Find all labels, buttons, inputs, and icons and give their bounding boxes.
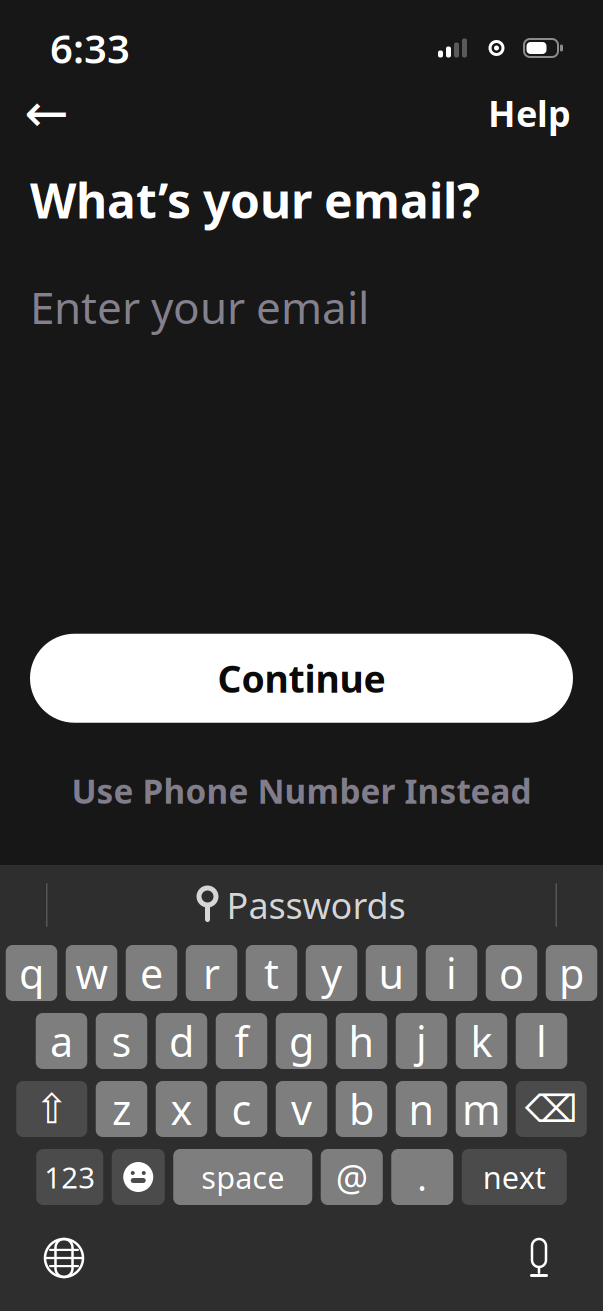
button[interactable]: Use Phone Number Instead <box>30 755 573 827</box>
staticText: d <box>169 1014 194 1068</box>
staticText: i <box>446 946 457 1000</box>
button[interactable]: k <box>456 1013 507 1069</box>
staticText: a <box>50 1014 73 1068</box>
staticText: m <box>462 1082 501 1136</box>
button[interactable]: z <box>96 1081 147 1137</box>
staticText: Passwords <box>226 881 405 929</box>
button[interactable]: j <box>396 1013 447 1069</box>
button[interactable]: Delete <box>516 1081 587 1137</box>
staticText: b <box>349 1082 374 1136</box>
button[interactable]: e <box>126 945 177 1001</box>
staticText: q <box>19 946 44 1000</box>
staticText: What’s your email? <box>30 168 480 232</box>
staticText: f <box>234 1014 248 1068</box>
button[interactable]: x <box>156 1081 207 1137</box>
staticText: n <box>408 1082 434 1136</box>
staticText: l <box>536 1014 547 1068</box>
staticText: next <box>483 1157 546 1197</box>
staticText: 6:33 <box>50 21 130 74</box>
staticText: ← <box>24 83 69 143</box>
button[interactable]: b <box>336 1081 387 1137</box>
staticText: o <box>499 946 524 1000</box>
button[interactable]: Help <box>480 84 579 142</box>
button[interactable]: y <box>306 945 357 1001</box>
button[interactable]: a <box>36 1013 87 1069</box>
button[interactable]: Shift <box>16 1081 87 1137</box>
button[interactable]: Dictation <box>513 1232 565 1284</box>
button[interactable]: m <box>456 1081 507 1137</box>
staticText: r <box>203 946 220 1000</box>
staticText: Continue <box>217 653 385 703</box>
button[interactable]: p <box>546 945 597 1001</box>
staticText: k <box>470 1014 492 1068</box>
button[interactable]: @ <box>321 1149 383 1205</box>
staticText: x <box>170 1082 192 1136</box>
staticText: . <box>417 1153 427 1201</box>
staticText: ⇧ <box>34 1085 69 1132</box>
button[interactable]: n <box>396 1081 447 1137</box>
staticText: e <box>140 946 163 1000</box>
staticText: g <box>289 1014 314 1068</box>
button[interactable]: Continue <box>30 634 573 723</box>
staticText: space <box>201 1157 284 1197</box>
staticText: @ <box>336 1153 368 1201</box>
staticText: Enter your email <box>30 278 369 336</box>
button[interactable]: space <box>173 1149 312 1205</box>
button[interactable]: d <box>156 1013 207 1069</box>
button[interactable]: l <box>516 1013 567 1069</box>
button[interactable]: Emoji <box>112 1149 165 1205</box>
button[interactable]: t <box>246 945 297 1001</box>
button[interactable]: . <box>391 1149 453 1205</box>
button[interactable]: q <box>6 945 57 1001</box>
staticText: ⌫ <box>525 1088 578 1130</box>
staticText: p <box>559 946 584 1000</box>
staticText: h <box>348 1014 374 1068</box>
button[interactable]: g <box>276 1013 327 1069</box>
button[interactable]: Passwords <box>163 871 439 939</box>
staticText: 123 <box>44 1157 95 1196</box>
staticText: u <box>378 946 404 1000</box>
button[interactable]: 123 <box>36 1149 103 1205</box>
button[interactable]: r <box>186 945 237 1001</box>
button[interactable]: v <box>276 1081 327 1137</box>
button[interactable]: w <box>66 945 117 1001</box>
button[interactable]: o <box>486 945 537 1001</box>
button[interactable]: Back <box>24 84 84 142</box>
button[interactable]: next <box>462 1149 567 1205</box>
button[interactable]: f <box>216 1013 267 1069</box>
staticText: Use Phone Number Instead <box>71 769 531 813</box>
button[interactable]: i <box>426 945 477 1001</box>
button[interactable]: u <box>366 945 417 1001</box>
staticText: z <box>112 1082 131 1136</box>
staticText: v <box>291 1082 312 1136</box>
staticText: w <box>75 946 107 1000</box>
button[interactable]: h <box>336 1013 387 1069</box>
staticText: j <box>416 1014 427 1068</box>
staticText: Help <box>488 89 571 137</box>
staticText: t <box>264 946 279 1000</box>
button[interactable]: Switch keyboard <box>38 1232 90 1284</box>
staticText: s <box>111 1014 131 1068</box>
staticText: y <box>321 946 342 1000</box>
staticText: c <box>231 1082 251 1136</box>
button[interactable]: c <box>216 1081 267 1137</box>
button[interactable]: s <box>96 1013 147 1069</box>
